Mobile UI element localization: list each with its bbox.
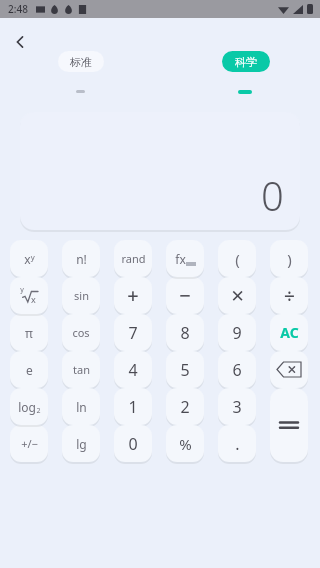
button[interactable]: 4 — [114, 351, 152, 388]
staticText: 科学 — [235, 55, 257, 69]
button[interactable]: +/− — [10, 425, 48, 462]
staticText: sin — [74, 288, 89, 303]
button[interactable]: n! — [62, 240, 100, 277]
staticText: ( — [235, 249, 240, 269]
button[interactable]: AC — [270, 314, 308, 351]
staticText: lg — [76, 436, 87, 452]
button[interactable]: % — [166, 425, 204, 462]
staticText: 5 — [180, 359, 190, 381]
button[interactable]: 标准 — [58, 51, 104, 72]
staticText: 9 — [232, 322, 242, 344]
button[interactable]: + — [114, 277, 152, 314]
staticText: 0 — [261, 168, 284, 222]
button[interactable]: rand — [114, 240, 152, 277]
staticText: xʸ — [24, 251, 35, 267]
staticText: x — [31, 293, 36, 305]
staticText: n! — [76, 251, 87, 267]
button[interactable]: cos — [62, 314, 100, 351]
button[interactable]: Equals — [270, 388, 308, 462]
staticText: 2 — [36, 406, 41, 416]
staticText: % — [179, 434, 192, 454]
button[interactable]: 2 — [166, 388, 204, 425]
button[interactable]: . — [218, 425, 256, 462]
button[interactable]: 1 — [114, 388, 152, 425]
staticText: e — [26, 362, 33, 378]
staticText: ✕ — [230, 286, 245, 306]
staticText: 3 — [232, 396, 242, 418]
button[interactable]: 9 — [218, 314, 256, 351]
staticText: 1 — [128, 396, 138, 418]
button[interactable]: π — [10, 314, 48, 351]
staticText: 7 — [128, 322, 138, 344]
button[interactable]: ( — [218, 240, 256, 277]
button[interactable]: ln — [62, 388, 100, 425]
button[interactable]: 5 — [166, 351, 204, 388]
staticText: + — [127, 282, 139, 309]
button[interactable]: 3 — [218, 388, 256, 425]
button[interactable]: Backspace — [270, 351, 308, 388]
button[interactable]: sin — [62, 277, 100, 314]
button[interactable]: ✕ — [218, 277, 256, 314]
button[interactable]: xʸ — [10, 240, 48, 277]
staticText: 0 — [128, 433, 138, 455]
staticText: 2 — [180, 396, 190, 418]
staticText: ÷ — [284, 283, 295, 309]
staticText: fx — [175, 251, 186, 267]
button[interactable]: ) — [270, 240, 308, 277]
button[interactable]: 8 — [166, 314, 204, 351]
button[interactable]: Back — [4, 26, 36, 58]
button[interactable]: lg — [62, 425, 100, 462]
staticText: log — [18, 399, 36, 415]
staticText: 4 — [128, 359, 138, 381]
staticText: 8 — [180, 322, 190, 344]
staticText: ln — [76, 399, 87, 415]
button[interactable]: 0 — [114, 425, 152, 462]
staticText: tan — [73, 362, 90, 377]
button[interactable]: − — [166, 277, 204, 314]
button[interactable]: Log base 2 — [10, 388, 48, 425]
button[interactable]: Nth root — [10, 277, 48, 314]
staticText: π — [25, 325, 33, 341]
staticText: 6 — [232, 359, 242, 381]
button[interactable]: tan — [62, 351, 100, 388]
staticText: +/− — [21, 436, 38, 451]
staticText: AC — [280, 323, 299, 342]
button[interactable]: 7 — [114, 314, 152, 351]
staticText: rand — [121, 251, 146, 266]
staticText: cos — [72, 325, 90, 340]
button[interactable]: ÷ — [270, 277, 308, 314]
staticText: − — [179, 282, 191, 309]
button[interactable]: 科学 — [222, 51, 270, 72]
staticText: . — [235, 433, 240, 455]
button[interactable]: 6 — [218, 351, 256, 388]
staticText: 标准 — [70, 55, 92, 69]
button[interactable]: Functions — [166, 240, 204, 277]
staticText: 2:48 — [8, 2, 28, 16]
staticText: ) — [287, 249, 292, 269]
staticText: y — [20, 285, 24, 295]
button[interactable]: e — [10, 351, 48, 388]
